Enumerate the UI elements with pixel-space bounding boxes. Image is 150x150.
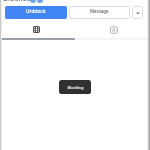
button[interactable]: Unblock xyxy=(5,6,67,19)
button[interactable]: Keypad xyxy=(0,19,75,40)
button[interactable]: Call xyxy=(30,0,36,3)
button[interactable]: Contacts xyxy=(75,19,150,40)
staticText: Message xyxy=(90,8,109,14)
button[interactable]: Message xyxy=(69,6,130,19)
staticText: Blocking xyxy=(67,85,84,90)
staticText: Blocked xyxy=(3,0,32,3)
staticText: Unblock xyxy=(26,8,46,15)
button[interactable]: Video call xyxy=(37,0,43,3)
button[interactable]: More options xyxy=(132,6,143,19)
